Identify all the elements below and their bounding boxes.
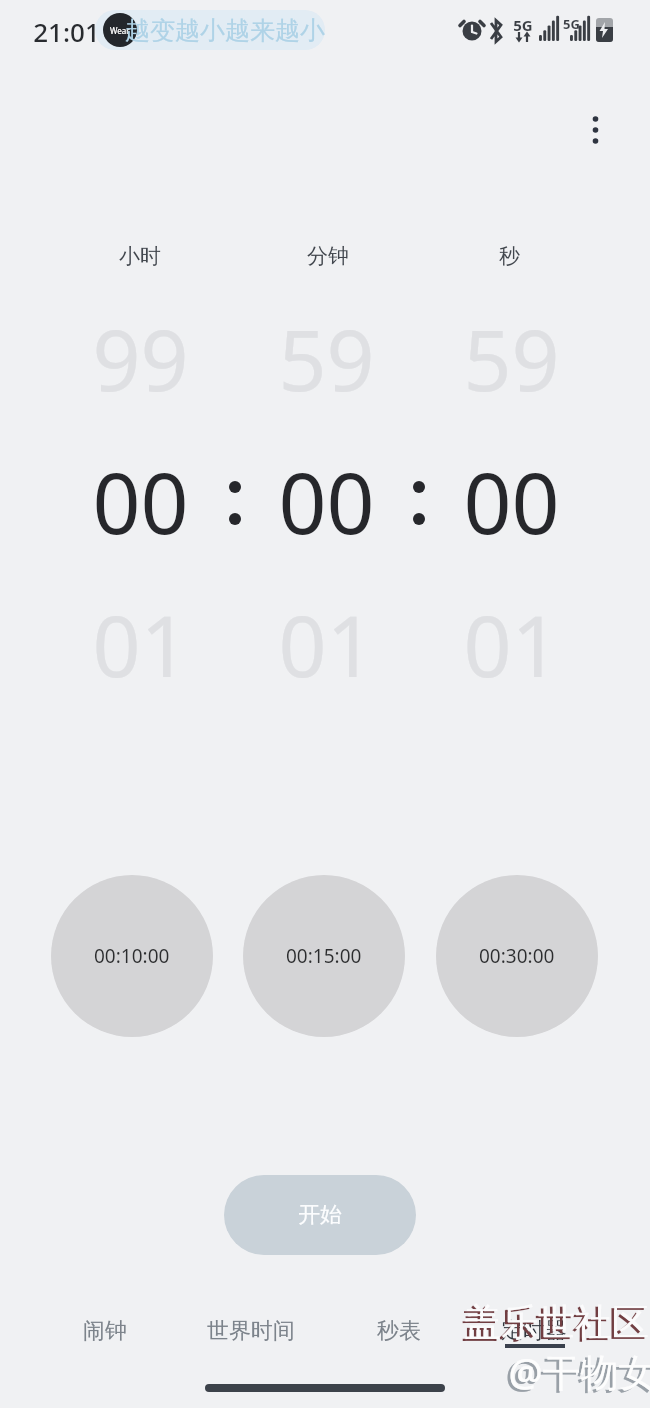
button[interactable]: 00:15:00 — [243, 875, 405, 1037]
staticText: 世界时间 — [207, 1317, 295, 1345]
staticText: 21:01 — [33, 14, 100, 49]
staticText: 开始 — [298, 1201, 342, 1229]
staticText: 00:30:00 — [479, 943, 555, 969]
button[interactable] — [575, 105, 615, 155]
staticText: @干物女 — [505, 1347, 650, 1399]
button[interactable]: 00:30:00 — [436, 875, 598, 1037]
staticText: 01 — [463, 587, 560, 701]
button[interactable]: 00:10:00 — [51, 875, 213, 1037]
staticText: 5G — [513, 15, 533, 35]
staticText: 00 — [278, 444, 375, 558]
staticText: 59 — [463, 301, 560, 415]
button[interactable]: 开始 — [224, 1175, 416, 1255]
staticText: 小时 — [119, 243, 161, 269]
staticText: 01 — [278, 587, 375, 701]
staticText: 00:10:00 — [94, 943, 170, 969]
staticText: 定时器 — [501, 1317, 567, 1345]
staticText: @干物女 — [508, 1345, 650, 1397]
staticText: 00 — [92, 444, 189, 558]
staticText: 闹钟 — [83, 1317, 127, 1345]
staticText: 00 — [463, 444, 560, 558]
staticText: 盖乐世社区 — [461, 1301, 646, 1348]
button[interactable]: 秒表 — [349, 1301, 449, 1361]
staticText: 99 — [92, 301, 189, 415]
staticText: 秒表 — [377, 1317, 421, 1345]
staticText: 越变越小越来越小 — [125, 15, 325, 46]
staticText: 盖乐世社区 — [464, 1299, 649, 1346]
staticText: 59 — [278, 301, 375, 415]
staticText: 分钟 — [307, 243, 349, 269]
staticText: 秒 — [499, 243, 520, 269]
staticText: 00:15:00 — [286, 943, 362, 969]
button[interactable]: 定时器 — [484, 1301, 584, 1361]
button[interactable] — [95, 10, 325, 50]
staticText: 5G — [563, 15, 580, 33]
staticText: Wear — [110, 25, 130, 36]
staticText: 01 — [92, 587, 189, 701]
button[interactable]: 闹钟 — [55, 1301, 155, 1361]
button[interactable]: 世界时间 — [191, 1301, 311, 1361]
